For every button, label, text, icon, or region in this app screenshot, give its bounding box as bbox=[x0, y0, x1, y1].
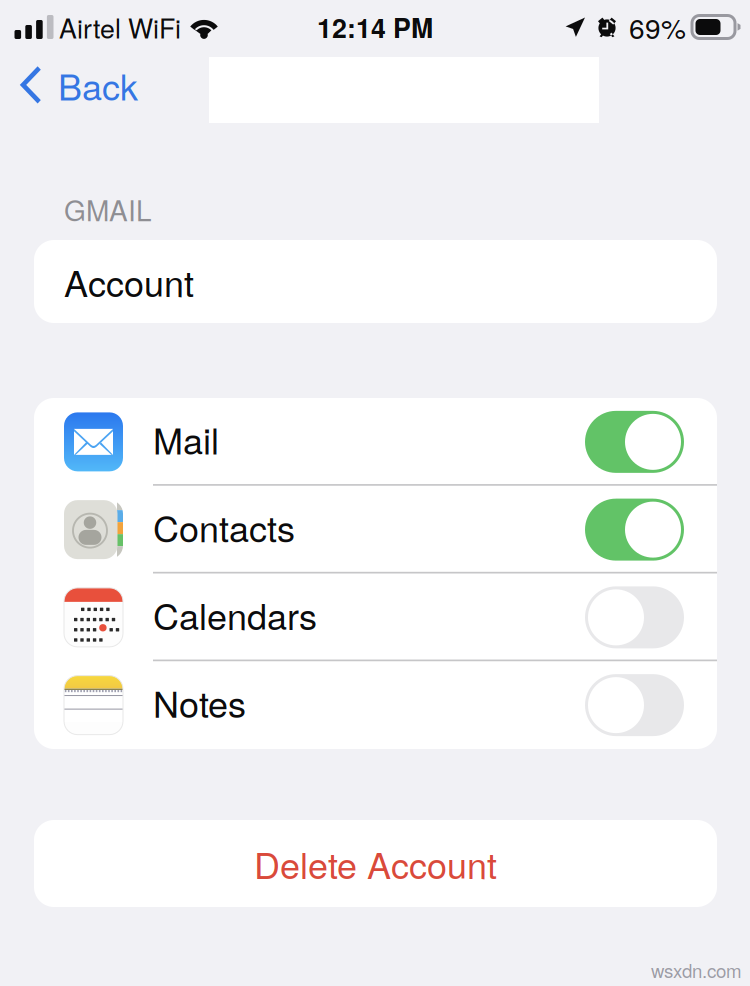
button[interactable]: Mail bbox=[34, 398, 717, 486]
staticText: GMAIL bbox=[64, 189, 152, 229]
staticText: Calendars bbox=[153, 589, 317, 640]
button[interactable]: Back bbox=[0, 50, 152, 120]
button[interactable]: Calendars bbox=[34, 573, 717, 661]
button[interactable]: Delete Account bbox=[34, 820, 717, 907]
button[interactable]: Mail, on bbox=[571, 398, 717, 486]
staticText: wsxdn.com bbox=[651, 957, 742, 983]
staticText: Airtel WiFi bbox=[59, 8, 181, 46]
staticText: Account bbox=[64, 256, 194, 307]
staticText: Delete Account bbox=[254, 838, 497, 889]
staticText: 69% bbox=[629, 7, 686, 47]
staticText: 12:14 PM bbox=[317, 8, 433, 46]
staticText: Notes bbox=[153, 676, 246, 728]
staticText: Contacts bbox=[153, 501, 295, 552]
button[interactable]: Contacts, on bbox=[571, 486, 717, 574]
staticText: Mail bbox=[153, 413, 219, 465]
staticText: Back bbox=[58, 59, 138, 111]
button[interactable]: Account bbox=[34, 240, 717, 323]
button[interactable]: Notes bbox=[34, 661, 717, 749]
button[interactable]: Contacts bbox=[34, 486, 717, 574]
button[interactable]: Notes, off bbox=[571, 661, 717, 749]
button[interactable]: Calendars, off bbox=[571, 573, 717, 661]
